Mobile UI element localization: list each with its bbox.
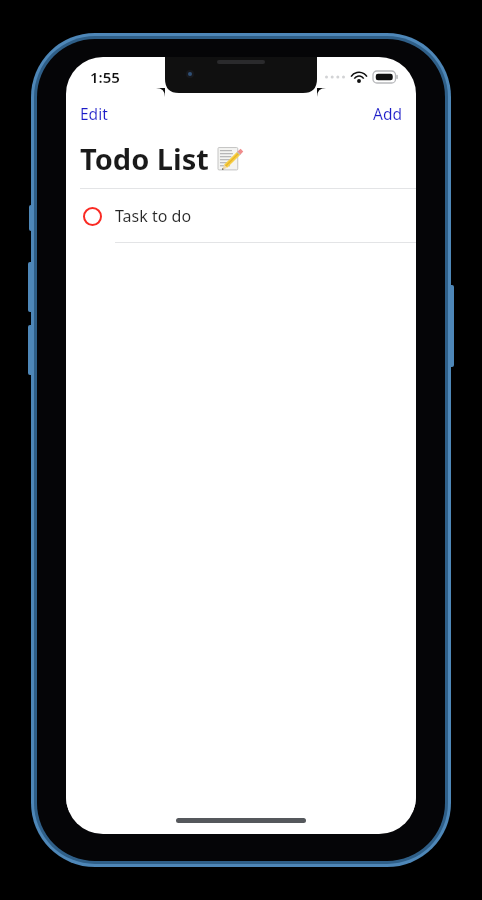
- button[interactable]: Toggle task complete: [66, 189, 416, 242]
- staticText: Add: [373, 103, 402, 124]
- button[interactable]: Edit: [66, 97, 122, 130]
- staticText: Todo List: [80, 139, 209, 178]
- other: Toggle task complete: [80, 204, 104, 228]
- staticText: Edit: [80, 103, 108, 124]
- button[interactable]: Add: [359, 97, 416, 130]
- staticText: 1:55: [90, 67, 120, 87]
- staticText: Task to do: [115, 205, 192, 227]
